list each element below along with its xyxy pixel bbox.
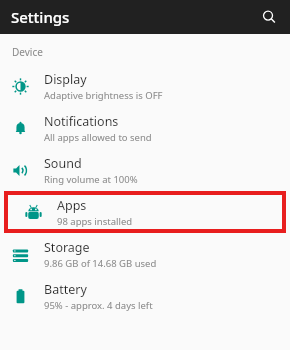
staticText: All apps allowed to send (44, 131, 152, 144)
staticText: Display (44, 71, 87, 88)
button[interactable]: Display (0, 65, 290, 107)
staticText: Battery (44, 281, 87, 298)
staticText: 95% - approx. 4 days left (44, 299, 153, 312)
button[interactable]: Notifications (0, 107, 290, 149)
staticText: Settings (11, 7, 70, 27)
staticText: 9.86 GB of 14.68 GB used (44, 257, 157, 270)
staticText: Storage (44, 239, 90, 256)
staticText: 98 apps installed (57, 215, 133, 228)
staticText: Sound (44, 155, 82, 172)
button[interactable]: Storage (0, 233, 290, 275)
button[interactable]: Apps (6, 193, 284, 231)
staticText: Ring volume at 100% (44, 173, 138, 186)
staticText: Apps (57, 197, 87, 214)
staticText: Notifications (44, 113, 119, 130)
button[interactable]: Battery (0, 275, 290, 317)
staticText: Adaptive brightness is OFF (44, 89, 163, 102)
button[interactable]: Sound (0, 149, 290, 191)
button[interactable]: Search (256, 4, 282, 30)
staticText: Device (12, 45, 43, 59)
